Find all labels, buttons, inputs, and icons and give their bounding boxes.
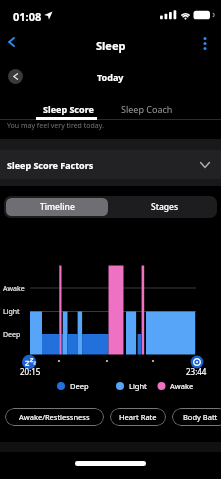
button[interactable]: Body Batt: [172, 408, 221, 426]
button[interactable]: Sleep Score: [37, 100, 100, 118]
button[interactable]: Stages: [113, 196, 217, 218]
button[interactable]: Heart Rate: [110, 408, 166, 426]
staticText: Light: [129, 381, 147, 391]
staticText: Deep: [70, 381, 89, 391]
staticText: You may feel very tired today.: [7, 121, 104, 131]
staticText: Sleep Score: [43, 103, 94, 115]
staticText: Awake: [3, 284, 25, 294]
button[interactable]: Sleep Score Factors: [0, 150, 221, 179]
staticText: Today: [97, 71, 124, 83]
staticText: Body Batt: [183, 412, 218, 422]
staticText: Timeline: [40, 201, 75, 213]
button[interactable]: [196, 33, 213, 53]
button[interactable]: Sleep Coach: [115, 100, 178, 118]
staticText: Heart Rate: [119, 412, 157, 422]
staticText: 23:44: [186, 366, 207, 377]
staticText: Awake: [170, 381, 194, 391]
staticText: Sleep Coach: [121, 103, 173, 115]
staticText: Sleep Score Factors: [7, 159, 94, 171]
button[interactable]: Awake/Restlessness: [5, 408, 104, 426]
staticText: Light: [3, 307, 20, 317]
staticText: 20:15: [20, 366, 41, 377]
button[interactable]: [0, 32, 28, 52]
staticText: 01:08: [13, 9, 42, 24]
button[interactable]: Timeline: [6, 198, 108, 216]
staticText: Awake/Restlessness: [19, 412, 90, 422]
staticText: Deep: [3, 330, 21, 340]
button[interactable]: [8, 69, 23, 84]
staticText: Sleep: [96, 38, 126, 53]
staticText: Stages: [151, 201, 179, 213]
